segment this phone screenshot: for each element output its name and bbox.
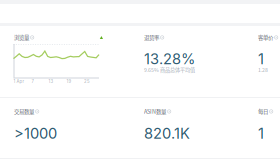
- button[interactable]: 浏览量: [14, 33, 34, 41]
- button[interactable]: ASIN数量: [144, 107, 254, 147]
- button[interactable]: 交易数量: [14, 107, 124, 147]
- staticText: 13.28%: [144, 50, 195, 68]
- staticText: 交易数量: [14, 107, 34, 115]
- staticText: ASIN数量: [144, 107, 166, 115]
- staticText: 退货率: [144, 33, 159, 41]
- button[interactable]: 退货率: [144, 33, 254, 73]
- staticText: 浏览量: [14, 33, 29, 41]
- staticText: 820.1K: [144, 124, 190, 142]
- staticText: 19: [66, 79, 71, 84]
- staticText: 1: [258, 124, 264, 142]
- staticText: 1 Apr: [13, 79, 24, 84]
- staticText: 7: [31, 79, 33, 84]
- staticText: 25: [84, 79, 90, 84]
- staticText: >1000: [14, 124, 57, 142]
- staticText: 1: [258, 50, 264, 68]
- button[interactable]: 每日: [258, 107, 280, 147]
- staticText: 9.65% 商品总体平均值: [144, 66, 195, 73]
- button[interactable]: 客单价: [258, 33, 280, 73]
- staticText: 13: [48, 79, 53, 84]
- staticText: 1.28: [258, 66, 268, 73]
- staticText: 每日: [258, 107, 268, 115]
- staticText: 客单价: [258, 33, 273, 41]
